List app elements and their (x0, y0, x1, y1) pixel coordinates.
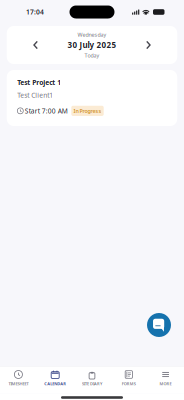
button[interactable]: Previous day (9, 26, 63, 64)
staticText: SITE DIARY (82, 381, 102, 386)
button[interactable]: Test Project 1 (7, 70, 177, 126)
button[interactable]: Chat (147, 313, 171, 337)
staticText: Test Project 1 (17, 78, 61, 87)
button[interactable]: MORE (147, 366, 184, 393)
staticText: Start 7:00 AM (25, 106, 68, 115)
staticText: CALENDAR (44, 381, 66, 386)
button[interactable]: TIMESHEET (0, 366, 37, 393)
staticText: Wednesday (77, 31, 106, 38)
staticText: 30 July 2025 (67, 40, 116, 50)
button[interactable]: CALENDAR (37, 366, 74, 393)
staticText: In Progress (73, 107, 101, 114)
staticText: Today (84, 52, 99, 59)
button[interactable]: Next day (121, 26, 175, 64)
button[interactable]: SITE DIARY (74, 366, 110, 393)
staticText: FORMS (122, 381, 136, 386)
staticText: MORE (160, 381, 172, 386)
staticText: TIMESHEET (8, 381, 28, 386)
button[interactable]: FORMS (110, 366, 147, 393)
staticText: 17:04 (26, 8, 44, 16)
staticText: Test Client1 (17, 91, 53, 100)
